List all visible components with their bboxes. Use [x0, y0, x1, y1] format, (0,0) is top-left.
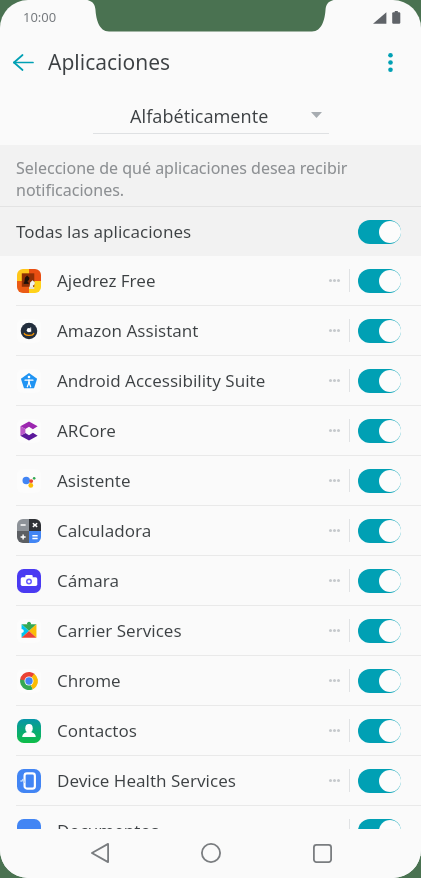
button[interactable]: Back	[77, 830, 123, 876]
button[interactable]: Cámara	[0, 556, 421, 605]
button[interactable]: Contactos	[0, 706, 421, 755]
staticText: 10:00	[23, 8, 57, 26]
staticText: Android Accessibility Suite	[57, 369, 327, 392]
staticText: Calculadora	[57, 519, 327, 542]
button[interactable]: Amazon Assistant	[0, 306, 421, 355]
button[interactable]: Chrome	[0, 656, 421, 705]
staticText: Ajedrez Free	[57, 269, 327, 292]
button[interactable]: ARCore	[0, 406, 421, 455]
button[interactable]: More options	[369, 41, 411, 83]
button[interactable]: Carrier Services	[0, 606, 421, 655]
button[interactable]: Android Accessibility Suite	[0, 356, 421, 405]
staticText: Documentos	[57, 819, 327, 842]
button[interactable]: Ajedrez Free	[0, 256, 421, 305]
button[interactable]: Asistente	[0, 456, 421, 505]
staticText: Todas las aplicaciones	[16, 220, 358, 243]
staticText: Asistente	[57, 469, 327, 492]
staticText: ARCore	[57, 419, 327, 442]
staticText: Chrome	[57, 669, 327, 692]
button[interactable]: Calculadora	[0, 506, 421, 555]
staticText: Cámara	[57, 569, 327, 592]
button[interactable]: Home	[188, 830, 234, 876]
staticText: Amazon Assistant	[57, 319, 327, 342]
button[interactable]: Recents	[299, 830, 345, 876]
staticText: Device Health Services	[57, 769, 327, 792]
button[interactable]: Device Health Services	[0, 756, 421, 805]
button[interactable]: Todas las aplicaciones	[0, 207, 421, 256]
staticText: Alfabéticamente	[130, 104, 269, 129]
button[interactable]: Documentos	[0, 806, 421, 855]
staticText: Aplicaciones	[48, 48, 171, 77]
staticText: Contactos	[57, 719, 327, 742]
button[interactable]: Back	[2, 41, 44, 83]
staticText: Seleccione de qué aplicaciones desea rec…	[16, 157, 359, 201]
button[interactable]: Alfabéticamente	[93, 90, 329, 134]
staticText: Carrier Services	[57, 619, 327, 642]
